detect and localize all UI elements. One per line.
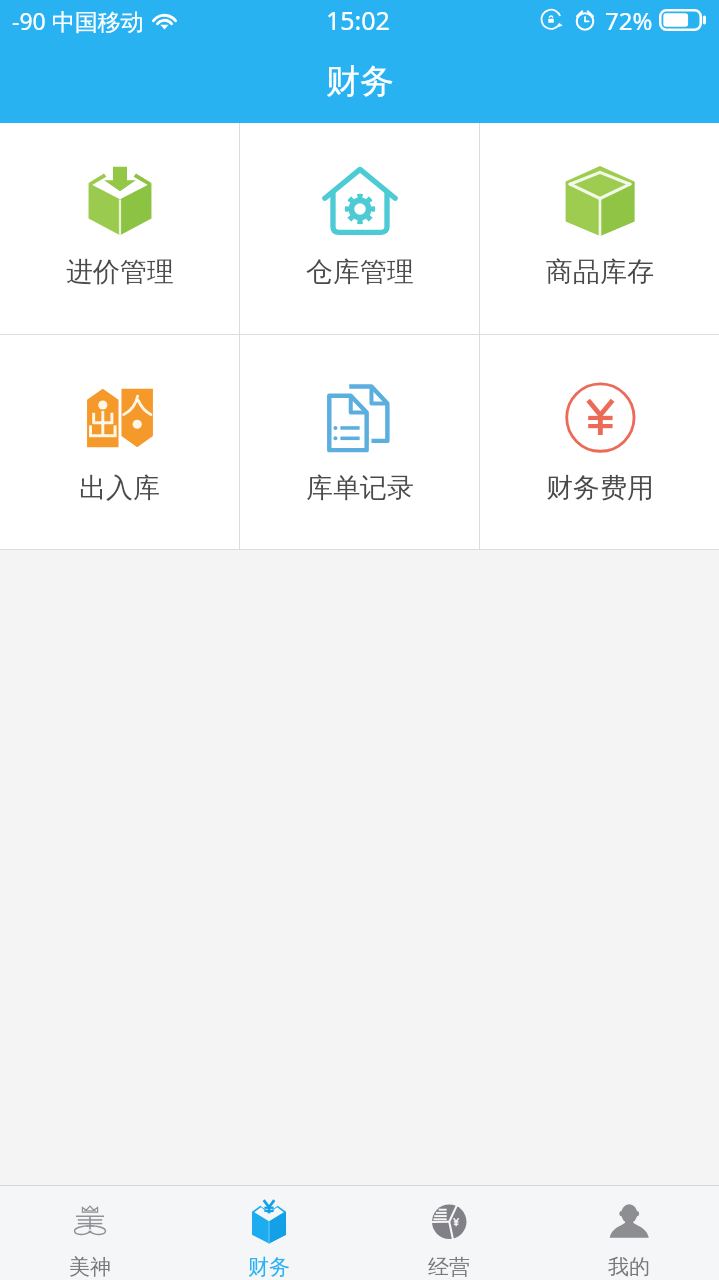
button[interactable]: 美神 bbox=[0, 1186, 179, 1280]
staticText: 美神 bbox=[69, 1254, 111, 1280]
button[interactable]: 库单记录 bbox=[240, 335, 479, 549]
staticText: -90 中国移动 bbox=[12, 5, 144, 36]
button[interactable]: 经营 bbox=[359, 1186, 539, 1280]
staticText: 进价管理 bbox=[66, 255, 174, 289]
staticText: 财务 bbox=[248, 1254, 290, 1280]
button[interactable]: 进价管理 bbox=[0, 123, 239, 334]
staticText: 我的 bbox=[608, 1254, 650, 1280]
button[interactable]: 我的 bbox=[539, 1186, 719, 1280]
button[interactable]: 仓库管理 bbox=[240, 123, 479, 334]
button[interactable]: 财务 bbox=[179, 1186, 359, 1280]
staticText: 商品库存 bbox=[546, 255, 654, 289]
staticText: 库单记录 bbox=[306, 471, 414, 505]
staticText: 15:02 bbox=[326, 3, 390, 37]
button[interactable]: 财务费用 bbox=[480, 335, 719, 549]
button[interactable]: 出入库 bbox=[0, 335, 239, 549]
staticText: 出入库 bbox=[79, 471, 160, 505]
staticText: 仓库管理 bbox=[306, 255, 414, 289]
staticText: 经营 bbox=[428, 1254, 470, 1280]
button[interactable]: 商品库存 bbox=[480, 123, 719, 334]
staticText: 财务 bbox=[326, 60, 394, 103]
staticText: 财务费用 bbox=[546, 471, 654, 505]
staticText: 72% bbox=[605, 4, 653, 37]
